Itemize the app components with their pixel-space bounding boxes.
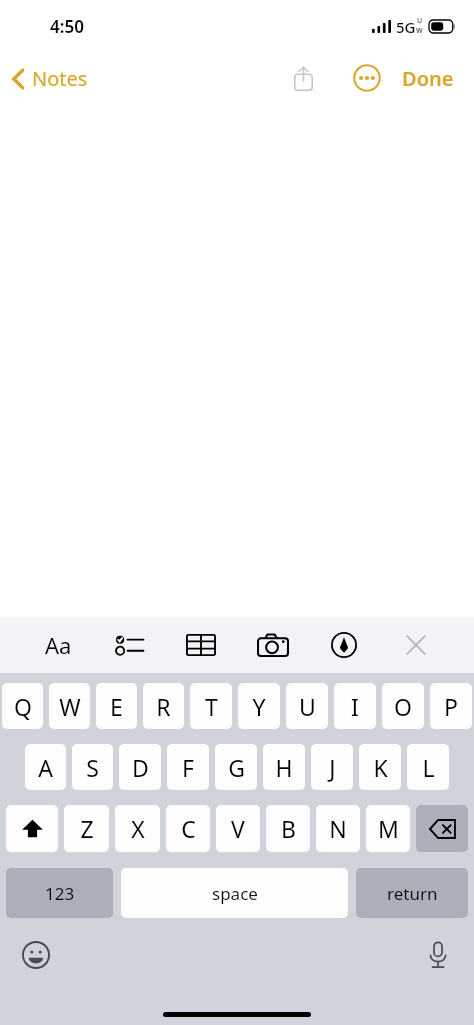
button[interactable]: Q [2, 683, 43, 729]
button[interactable]: More options [346, 57, 388, 99]
button[interactable]: Done [398, 59, 458, 98]
staticText: B [281, 813, 296, 844]
staticText: N [329, 813, 347, 844]
staticText: Notes [32, 65, 88, 92]
staticText: 4:50 [50, 15, 84, 38]
button[interactable]: G [215, 744, 257, 790]
button[interactable]: E [96, 683, 137, 729]
staticText: Q [14, 691, 32, 722]
button[interactable]: X [115, 805, 160, 852]
staticText: V [231, 813, 245, 844]
button[interactable]: A [25, 744, 66, 790]
button[interactable]: Table [178, 622, 224, 668]
button[interactable]: M [366, 805, 410, 852]
staticText: K [373, 752, 388, 783]
button[interactable]: C [166, 805, 210, 852]
staticText: C [181, 813, 196, 844]
button[interactable]: D [119, 744, 161, 790]
staticText: return [387, 882, 438, 905]
button[interactable]: K [359, 744, 401, 790]
button[interactable]: H [263, 744, 305, 790]
button[interactable]: Markup [321, 622, 367, 668]
button[interactable]: S [72, 744, 113, 790]
staticText: U [299, 691, 316, 722]
staticText: I [351, 691, 359, 722]
button[interactable]: Shift [6, 805, 58, 852]
staticText: G [228, 752, 245, 783]
button[interactable]: Backspace [416, 805, 468, 852]
staticText: W [59, 691, 81, 722]
button[interactable]: Dictation [416, 933, 460, 977]
button[interactable]: Close keyboard [393, 622, 439, 668]
staticText: 5G [396, 17, 416, 37]
staticText: J [329, 752, 336, 783]
staticText: O [394, 691, 412, 722]
staticText: Done [402, 65, 454, 92]
staticText: U [417, 16, 423, 26]
staticText: R [156, 691, 171, 722]
button[interactable]: P [430, 683, 472, 729]
button[interactable]: L [407, 744, 449, 790]
staticText: M [378, 813, 399, 844]
button[interactable]: Checklist [107, 622, 153, 668]
button[interactable]: B [266, 805, 310, 852]
button[interactable]: I [334, 683, 376, 729]
staticText: L [422, 752, 435, 783]
staticText: H [275, 752, 293, 783]
staticText: S [86, 752, 99, 783]
button[interactable]: Text format [35, 622, 81, 668]
button[interactable]: Emoji [14, 933, 58, 977]
button[interactable]: Notes [8, 61, 92, 96]
staticText: D [132, 752, 149, 783]
staticText: Z [80, 813, 94, 844]
staticText: A [38, 752, 53, 783]
button[interactable]: O [382, 683, 424, 729]
button[interactable]: J [311, 744, 353, 790]
staticText: W [416, 26, 423, 36]
staticText: space [212, 882, 258, 905]
staticText: Y [252, 691, 266, 722]
button[interactable]: 123 [6, 868, 113, 918]
button[interactable]: N [316, 805, 360, 852]
staticText: X [131, 813, 145, 844]
button[interactable]: Y [238, 683, 280, 729]
button[interactable]: return [356, 868, 468, 918]
staticText: E [110, 691, 123, 722]
staticText: P [444, 691, 458, 722]
button[interactable]: R [143, 683, 184, 729]
button[interactable]: space [121, 868, 348, 918]
staticText: T [205, 691, 218, 722]
button[interactable]: Camera [250, 622, 296, 668]
staticText: F [182, 752, 194, 783]
button[interactable]: Z [64, 805, 109, 852]
staticText: Aa [45, 630, 72, 660]
button[interactable]: U [286, 683, 328, 729]
button[interactable]: Share [282, 57, 324, 99]
button[interactable]: W [49, 683, 90, 729]
button[interactable]: V [216, 805, 260, 852]
button[interactable]: F [167, 744, 209, 790]
staticText: 123 [45, 882, 75, 905]
button[interactable]: T [190, 683, 232, 729]
